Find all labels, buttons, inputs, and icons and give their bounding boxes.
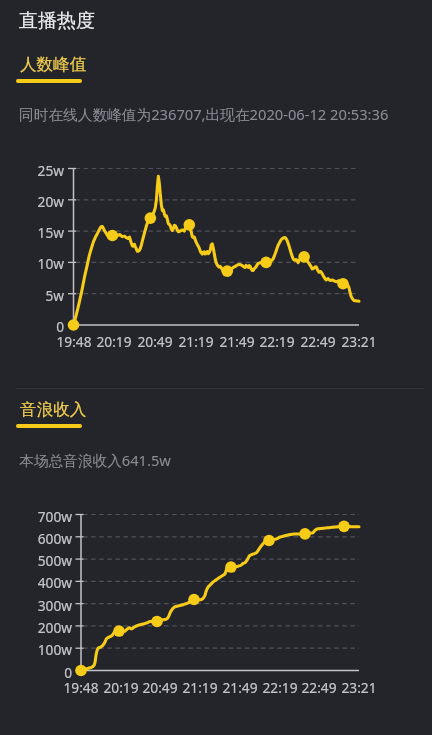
staticText: 22:49 (294, 678, 344, 697)
button[interactable]: 人数峰值 (16, 54, 83, 75)
staticText: 20w (20, 192, 64, 211)
staticText: 600w (28, 529, 72, 548)
staticText: 22:19 (255, 678, 305, 697)
staticText: 22:49 (293, 332, 343, 351)
button[interactable]: 音浪收入 (16, 399, 83, 420)
staticText: 22:19 (252, 332, 302, 351)
staticText: 人数峰值 (20, 54, 87, 75)
staticText: 20:19 (89, 332, 139, 351)
staticText: 700w (28, 507, 72, 526)
staticText: 100w (28, 640, 72, 659)
staticText: 300w (28, 596, 72, 615)
staticText: 21:19 (171, 332, 221, 351)
staticText: 音浪收入 (20, 399, 87, 420)
staticText: 21:49 (212, 332, 262, 351)
staticText: 21:49 (215, 678, 265, 697)
staticText: 0 (28, 663, 72, 682)
staticText: 19:48 (49, 332, 99, 351)
staticText: 10w (20, 254, 64, 273)
staticText: 23:21 (334, 678, 384, 697)
staticText: 15w (20, 223, 64, 242)
staticText: 25w (20, 161, 64, 180)
staticText: 20:19 (96, 678, 146, 697)
staticText: 5w (20, 286, 64, 305)
staticText: 400w (28, 573, 72, 592)
staticText: 同时在线人数峰值为236707,出现在2020-06-12 20:53:36 (19, 104, 389, 124)
staticText: 23:21 (334, 332, 384, 351)
staticText: 19:48 (56, 678, 106, 697)
staticText: 21:19 (175, 678, 225, 697)
staticText: 本场总音浪收入641.5w (19, 450, 171, 470)
staticText: 0 (20, 317, 64, 336)
staticText: 20:49 (135, 678, 185, 697)
staticText: 20:49 (130, 332, 180, 351)
staticText: 直播热度 (19, 9, 95, 33)
staticText: 200w (28, 618, 72, 637)
staticText: 500w (28, 551, 72, 570)
